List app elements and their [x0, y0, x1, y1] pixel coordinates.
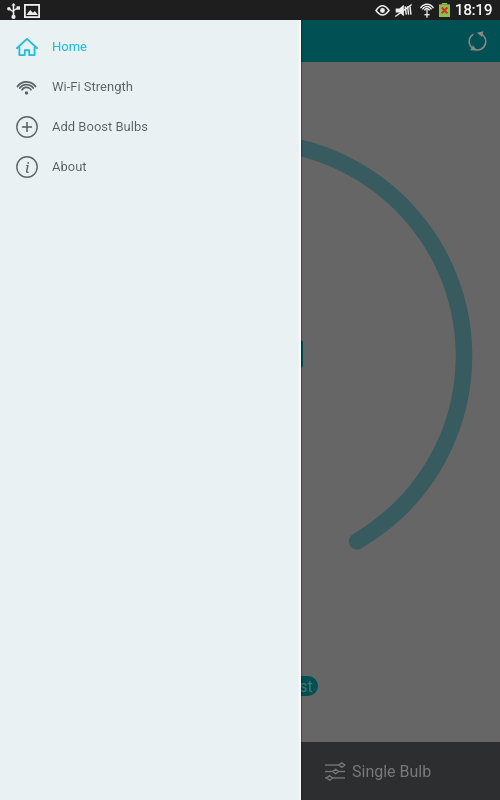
staticText: 18:19	[455, 1, 493, 19]
button[interactable]: Refresh	[460, 24, 494, 58]
staticText: Home	[52, 39, 87, 54]
staticText: i	[25, 158, 30, 177]
button[interactable]: Wi-Fi Strength	[0, 66, 301, 106]
button[interactable]: Single Bulb	[313, 742, 444, 800]
staticText: Wi-Fi Strength	[52, 79, 133, 94]
staticText: About	[52, 159, 87, 174]
button[interactable]: Boost	[262, 676, 318, 696]
staticText: Boost	[271, 677, 313, 696]
button[interactable]: Home	[0, 26, 301, 66]
staticText: Add Boost Bulbs	[52, 119, 148, 134]
button[interactable]: Brightness	[291, 340, 303, 368]
button[interactable]: i	[0, 146, 301, 186]
staticText: Single Bulb	[352, 762, 432, 781]
button[interactable]: Add Boost Bulbs	[0, 106, 301, 146]
